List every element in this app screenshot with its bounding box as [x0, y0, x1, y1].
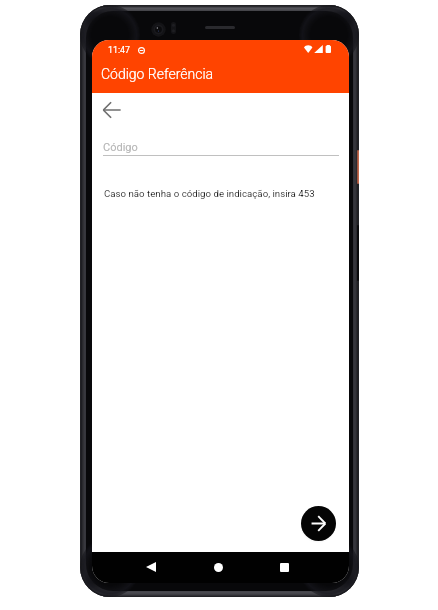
- button[interactable]: Back: [136, 552, 166, 582]
- button[interactable]: Código Referência: [92, 60, 349, 93]
- staticText: Código: [103, 141, 138, 154]
- button[interactable]: Home: [203, 552, 233, 582]
- button[interactable]: Recent apps: [269, 552, 299, 582]
- button[interactable]: Next: [301, 506, 336, 541]
- button[interactable]: Back: [97, 95, 127, 125]
- staticText: 11:47: [108, 45, 130, 55]
- button[interactable]: Código: [103, 141, 339, 156]
- staticText: Código Referência: [101, 66, 214, 82]
- staticText: Caso não tenha o código de indicação, in…: [104, 188, 315, 199]
